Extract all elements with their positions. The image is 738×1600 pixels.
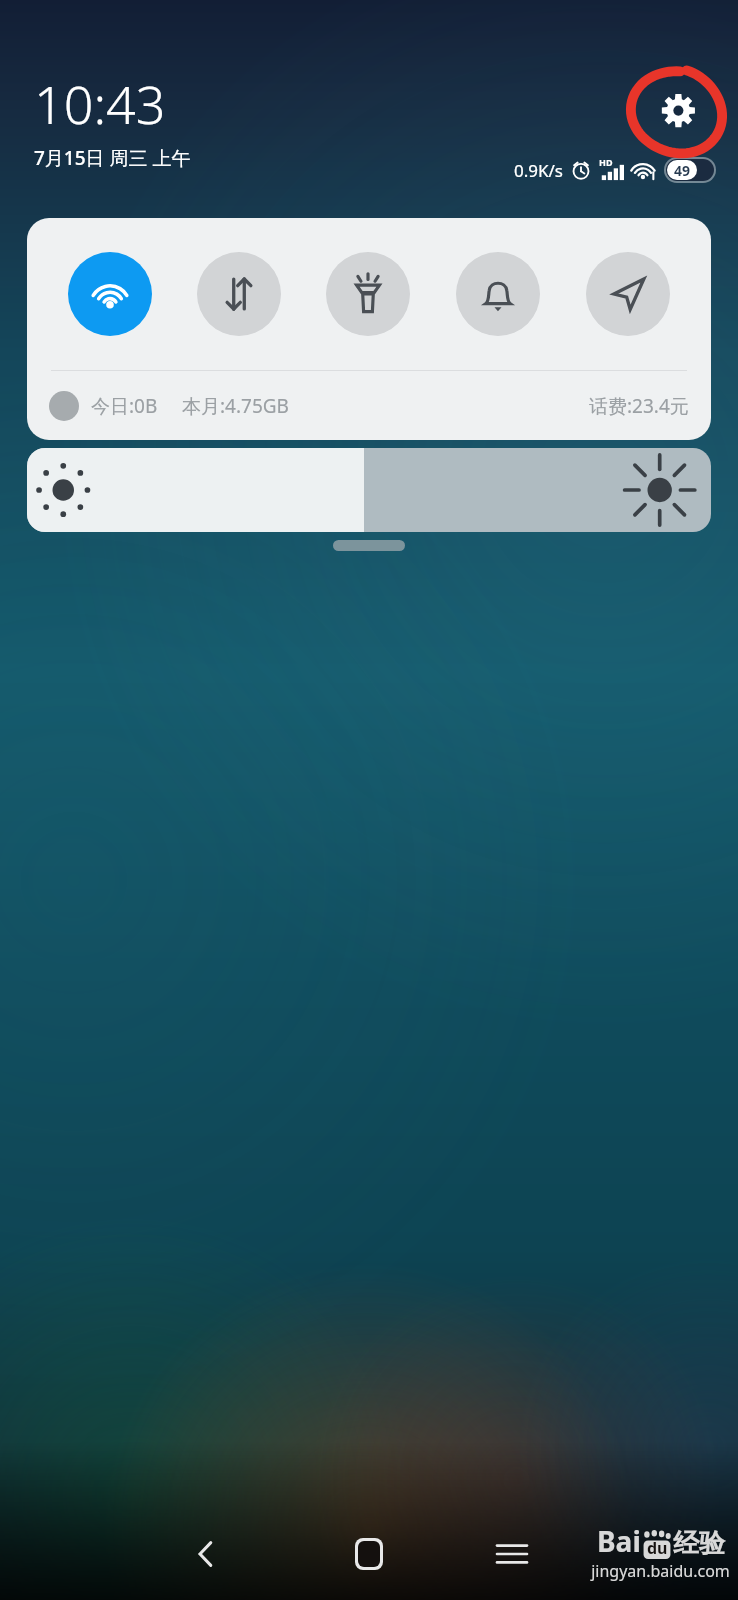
button[interactable]: Home: [333, 1518, 405, 1590]
button[interactable]: Back: [170, 1518, 242, 1590]
staticText: 10:43: [34, 68, 166, 139]
button[interactable]: Mobile data: [174, 218, 303, 370]
staticText: 49: [674, 161, 691, 180]
staticText: 7月15日 周三 上午: [34, 145, 191, 171]
button[interactable]: Silent mode: [433, 218, 563, 370]
staticText: jingyan.baidu.com: [591, 1560, 730, 1582]
staticText: 本月:4.75GB: [182, 393, 289, 419]
staticText: 经验: [673, 1527, 725, 1560]
staticText: HD: [599, 156, 613, 168]
button[interactable]: 今日:0B: [27, 371, 711, 440]
staticText: 今日:0B: [91, 393, 158, 419]
button[interactable]: Flashlight: [303, 218, 433, 370]
button[interactable]: Location: [563, 218, 693, 370]
staticText: 话费:23.4元: [589, 393, 689, 419]
staticText: 0.9K/s: [514, 159, 563, 182]
button[interactable]: Brightness: [27, 448, 711, 532]
button[interactable]: Expand: [333, 540, 405, 551]
button[interactable]: Recents: [476, 1518, 548, 1590]
button[interactable]: Wi-Fi: [45, 218, 174, 370]
staticText: Bai: [597, 1522, 641, 1560]
button[interactable]: Settings: [614, 52, 730, 168]
staticText: du: [647, 1537, 668, 1559]
